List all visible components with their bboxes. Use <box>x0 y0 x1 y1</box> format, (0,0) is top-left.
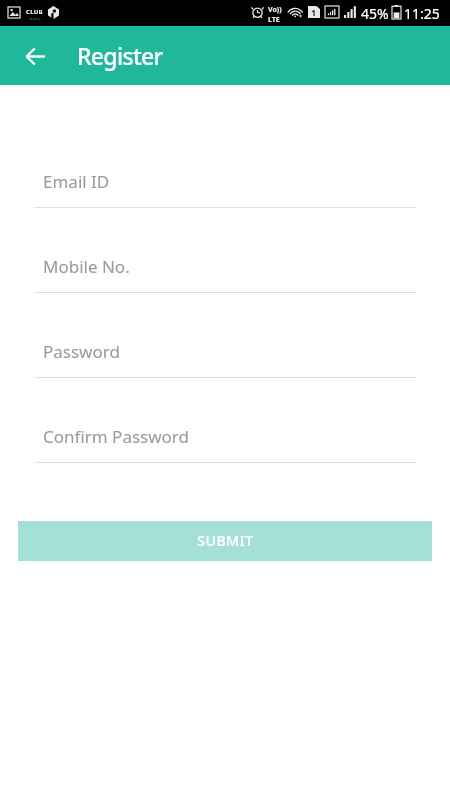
staticText: Register <box>77 40 163 71</box>
staticText: Password <box>43 340 120 363</box>
staticText: SUBMIT <box>197 531 254 550</box>
staticText: Vo)) <box>268 5 282 15</box>
staticText: Confirm Password <box>43 425 189 448</box>
button[interactable]: SUBMIT <box>18 521 432 561</box>
staticText: Email ID <box>43 170 110 193</box>
staticText: CLUB <box>26 8 43 16</box>
staticText: factory <box>29 16 41 21</box>
button[interactable]: Back <box>17 38 53 74</box>
button[interactable]: Email ID <box>0 123 450 208</box>
button[interactable]: Confirm Password <box>0 378 450 463</box>
button[interactable]: Password <box>0 293 450 378</box>
staticText: LTE <box>268 15 280 25</box>
staticText: Mobile No. <box>43 255 130 278</box>
staticText: 45% <box>361 4 389 23</box>
button[interactable]: Mobile No. <box>0 208 450 293</box>
staticText: 11:25 <box>404 4 440 23</box>
staticText: 1 <box>311 6 317 18</box>
